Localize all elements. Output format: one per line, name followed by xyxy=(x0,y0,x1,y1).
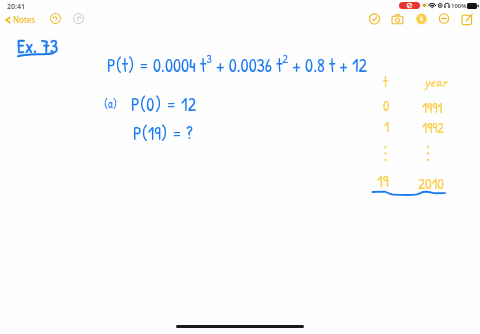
staticText: 1 xyxy=(384,117,390,136)
staticText: 20:41 xyxy=(7,2,25,12)
button[interactable]: Camera xyxy=(391,12,404,25)
button[interactable]: New note xyxy=(461,12,474,25)
staticText: Ex. 73 xyxy=(17,34,58,58)
button[interactable]: Redo xyxy=(73,13,84,24)
staticText: 1992 xyxy=(422,118,444,137)
button[interactable]: Done xyxy=(368,12,381,25)
staticText: 1991 xyxy=(422,98,443,117)
button[interactable]: Notes xyxy=(2,12,38,27)
staticText: t xyxy=(383,72,388,91)
staticText: P(0) = 12 xyxy=(131,92,197,116)
staticText: Notes xyxy=(13,14,36,25)
staticText: Ex. 73 xyxy=(17,34,58,58)
staticText: P(19) = ? xyxy=(133,121,193,145)
button[interactable]: Pen tool xyxy=(415,12,428,25)
staticText: (a) xyxy=(104,95,118,111)
staticText: P(t) = 0.0004 t3 + 0.0036 t2 + 0.8 t + 1… xyxy=(107,50,368,78)
staticText: 0 xyxy=(383,96,390,115)
staticText: 100% xyxy=(451,2,467,10)
button[interactable]: Hide toolbar xyxy=(438,12,451,25)
button[interactable]: Undo xyxy=(50,13,61,24)
staticText: 2010 xyxy=(418,173,444,193)
staticText: 19 xyxy=(377,170,389,192)
staticText: year xyxy=(424,72,447,92)
